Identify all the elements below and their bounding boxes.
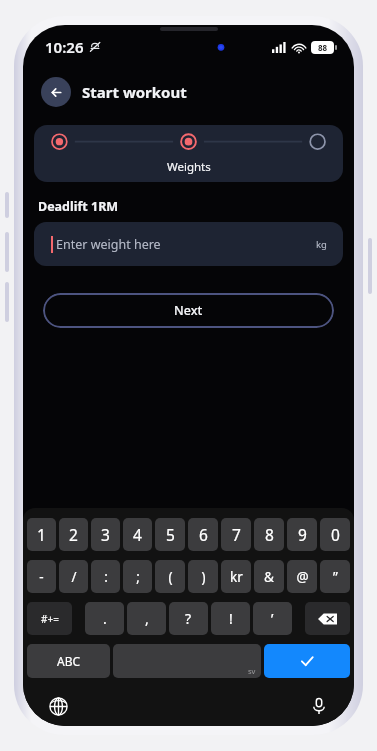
staticText: 10:26 xyxy=(45,37,84,57)
staticText: 5 xyxy=(166,524,175,545)
staticText: ABC xyxy=(57,653,81,669)
staticText: 4 xyxy=(133,524,142,545)
button[interactable]: Enter weight here xyxy=(34,222,343,266)
staticText: : xyxy=(104,568,108,586)
button[interactable]: ) xyxy=(188,560,218,593)
staticText: Deadlift 1RM xyxy=(38,198,119,215)
staticText: Next xyxy=(174,302,203,319)
button[interactable]: Done xyxy=(264,644,350,678)
button[interactable]: ’ xyxy=(253,602,292,635)
staticText: . xyxy=(103,609,107,628)
staticText: 8 xyxy=(265,524,274,545)
staticText: kr xyxy=(230,568,243,586)
staticText: Weights xyxy=(167,159,211,175)
button[interactable]: 7 xyxy=(221,518,251,551)
button[interactable]: 5 xyxy=(155,518,185,551)
button[interactable]: Back xyxy=(41,77,71,107)
button[interactable]: 3 xyxy=(91,518,120,551)
button[interactable]: 9 xyxy=(287,518,317,551)
staticText: ’ xyxy=(271,609,274,628)
button[interactable]: 2 xyxy=(59,518,88,551)
staticText: @ xyxy=(296,568,309,586)
staticText: & xyxy=(264,568,274,586)
staticText: 3 xyxy=(101,524,110,545)
button[interactable]: ( xyxy=(155,560,185,593)
staticText: ) xyxy=(201,568,206,586)
staticText: Start workout xyxy=(82,82,187,102)
staticText: 1 xyxy=(37,524,46,545)
button[interactable]: - xyxy=(27,560,56,593)
button[interactable]: 0 xyxy=(320,518,350,551)
staticText: sv xyxy=(248,666,256,676)
staticText: ( xyxy=(168,568,173,586)
button[interactable]: Next xyxy=(43,293,334,328)
button[interactable]: Change keyboard language xyxy=(47,695,69,717)
button[interactable]: : xyxy=(91,560,120,593)
staticText: Enter weight here xyxy=(56,236,161,253)
button[interactable]: & xyxy=(254,560,284,593)
staticText: / xyxy=(71,568,77,586)
staticText: 7 xyxy=(232,524,241,545)
staticText: - xyxy=(39,568,44,586)
staticText: , xyxy=(145,609,149,628)
staticText: ” xyxy=(333,568,338,586)
staticText: ; xyxy=(136,568,140,586)
button[interactable]: Backspace xyxy=(305,602,350,635)
button[interactable]: #+= xyxy=(27,602,72,635)
button[interactable]: ? xyxy=(169,602,208,635)
staticText: ! xyxy=(229,609,233,628)
button[interactable]: Space xyxy=(113,644,261,678)
button[interactable]: . xyxy=(85,602,124,635)
button[interactable]: 8 xyxy=(254,518,284,551)
button[interactable]: ABC xyxy=(27,644,110,678)
staticText: ? xyxy=(185,609,192,628)
staticText: 2 xyxy=(69,524,78,545)
button[interactable]: , xyxy=(127,602,166,635)
button[interactable]: ; xyxy=(123,560,152,593)
button[interactable]: / xyxy=(59,560,88,593)
staticText: 88 xyxy=(318,42,328,53)
button[interactable]: 4 xyxy=(123,518,152,551)
button[interactable]: kr xyxy=(221,560,251,593)
staticText: #+= xyxy=(41,612,59,626)
button[interactable]: ! xyxy=(211,602,250,635)
button[interactable]: @ xyxy=(287,560,317,593)
button[interactable]: Voice input xyxy=(308,695,330,717)
staticText: 0 xyxy=(331,524,340,545)
staticText: 6 xyxy=(199,524,208,545)
staticText: 9 xyxy=(298,524,307,545)
button[interactable]: 6 xyxy=(188,518,218,551)
button[interactable]: ” xyxy=(320,560,350,593)
staticText: kg xyxy=(316,238,327,251)
button[interactable]: 1 xyxy=(27,518,56,551)
